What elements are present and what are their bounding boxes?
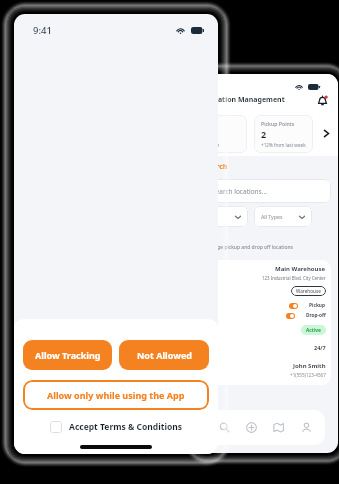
button[interactable]: Toggle — [289, 303, 298, 309]
staticText: Pickup — [309, 302, 326, 309]
staticText: Warehouse — [296, 288, 321, 294]
button[interactable]: Search — [212, 415, 236, 439]
button[interactable]: Accept Terms & Conditions — [23, 421, 209, 433]
staticText: 2 — [261, 128, 267, 140]
button[interactable]: Profile — [294, 415, 318, 439]
button[interactable]: Main Warehouse — [204, 260, 331, 385]
button[interactable]: Not Allowed — [119, 340, 209, 370]
button[interactable]: All Types — [254, 206, 312, 227]
staticText: John Smith — [293, 362, 326, 370]
staticText: +1(555)123-4567 — [290, 372, 326, 378]
staticText: Pickup Points — [261, 120, 295, 127]
button[interactable]: Next — [320, 127, 332, 139]
button[interactable]: Allow Tracking — [23, 340, 112, 370]
button[interactable]: Notifications — [316, 94, 329, 107]
staticText: 9:41 — [33, 24, 52, 37]
button[interactable]: Toggle — [286, 313, 295, 319]
staticText: Active — [306, 327, 321, 334]
staticText: Manage pickup and drop off locations — [204, 244, 293, 251]
staticText: Allow only while using the App — [47, 389, 185, 401]
staticText: Allow Tracking — [35, 349, 101, 361]
staticText: 123 Industrial Blvd, City Center — [262, 275, 326, 281]
staticText: Location Management — [206, 95, 285, 105]
button[interactable]: Map — [266, 415, 290, 439]
staticText: 24/7 — [314, 344, 326, 351]
staticText: Main Warehouse — [275, 265, 326, 273]
staticText: +1 from last month — [196, 142, 220, 148]
staticText: Accept Terms & Conditions — [69, 421, 183, 433]
button[interactable]: Allow only while using the App — [23, 380, 209, 410]
button[interactable]: Add — [239, 415, 263, 439]
staticText: +12% from last week — [261, 142, 306, 148]
staticText: All Types — [261, 213, 283, 220]
button[interactable]: All Status — [196, 206, 248, 227]
staticText: Search locations... — [212, 187, 267, 196]
button[interactable]: Active Locations — [196, 115, 247, 153]
staticText: Not Allowed — [137, 349, 192, 361]
button[interactable]: Pickup Points — [254, 115, 313, 153]
staticText: Drop-off — [306, 312, 326, 319]
button[interactable]: Search locations... — [204, 179, 331, 203]
staticText: Search — [204, 162, 228, 172]
